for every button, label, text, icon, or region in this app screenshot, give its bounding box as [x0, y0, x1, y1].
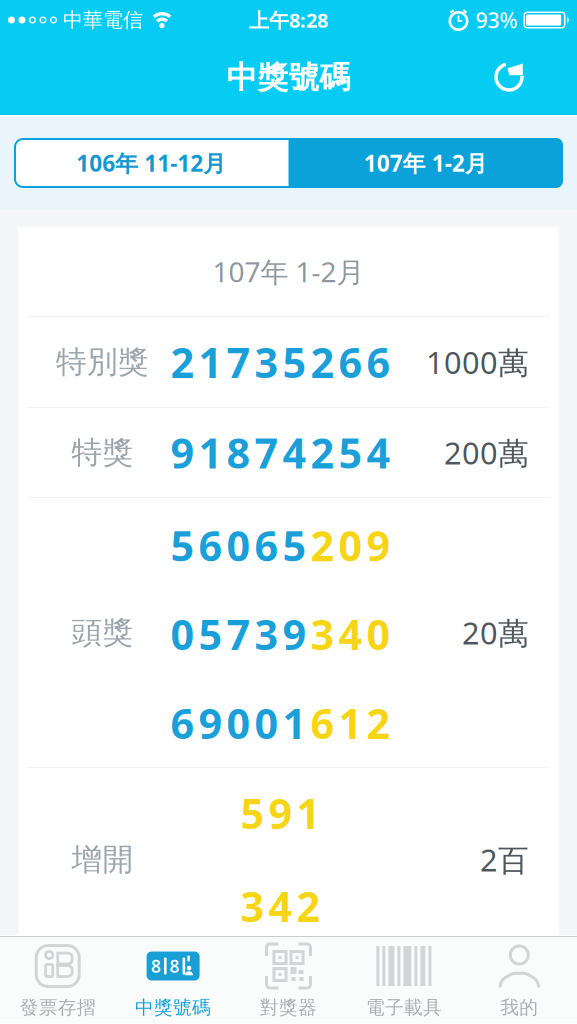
staticText: 1000萬 [426, 342, 529, 382]
staticText: 0 5 7 3 9 [170, 607, 310, 661]
button[interactable]: 106年 11-12月 [14, 138, 288, 188]
staticText: 93% [475, 6, 517, 34]
button[interactable]: 重新整理 [494, 61, 577, 94]
staticText: 對獎器 [260, 996, 317, 1019]
staticText: 5 6 0 6 5 [170, 518, 310, 573]
staticText: 107年 1-2月 [212, 253, 364, 290]
button[interactable]: 發票存摺 [0, 937, 115, 1023]
staticText: 106年 11-12月 [76, 148, 226, 178]
staticText: 2百 [480, 839, 529, 880]
staticText: 中獎號碼 [135, 996, 211, 1019]
staticText: 2 0 9 [310, 518, 390, 573]
staticText: 3 4 0 [310, 607, 390, 661]
staticText: 發票存摺 [20, 996, 96, 1019]
staticText: 8 [151, 954, 161, 977]
staticText: 20萬 [462, 612, 529, 653]
staticText: 上午8:28 [249, 7, 328, 33]
staticText: 2 1 7 3 5 2 6 6 [170, 335, 390, 389]
staticText: 3 4 2 [240, 878, 320, 933]
staticText: 頭獎 [71, 614, 133, 651]
staticText: 中獎號碼 [226, 59, 350, 96]
staticText: 200萬 [444, 432, 529, 473]
staticText: 6 1 2 [310, 695, 390, 750]
staticText: 9 1 8 7 4 2 5 4 [170, 425, 390, 480]
button[interactable]: 107年 1-2月 [288, 138, 563, 188]
staticText: 6 9 0 0 1 [170, 695, 310, 750]
staticText: 8 [170, 954, 180, 977]
staticText: 電子載具 [366, 996, 442, 1019]
button[interactable]: 我的 [462, 937, 577, 1023]
staticText: 5 9 1 [240, 786, 320, 840]
staticText: 107年 1-2月 [364, 148, 488, 178]
button[interactable]: 電子載具 [346, 937, 462, 1023]
staticText: 我的 [500, 996, 538, 1019]
staticText: 中華電信 [63, 8, 143, 32]
button[interactable]: 8 [115, 937, 231, 1023]
staticText: 增開 [71, 841, 133, 878]
staticText: 特獎 [71, 434, 133, 471]
staticText: 特別獎 [56, 343, 149, 381]
button[interactable]: 對獎器 [231, 937, 346, 1023]
